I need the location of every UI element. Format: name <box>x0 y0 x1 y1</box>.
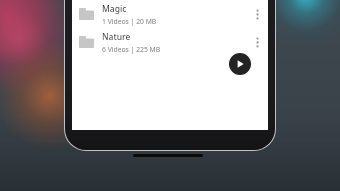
staticText: 1 Videos | 20 MB <box>102 17 157 26</box>
staticText: 6 Videos | 225 MB <box>102 45 161 54</box>
staticText: Nature <box>102 31 131 43</box>
button[interactable]: Play <box>229 53 251 75</box>
button[interactable]: More options <box>250 30 264 54</box>
button[interactable]: More options <box>250 2 264 26</box>
button[interactable]: Magic <box>72 0 268 28</box>
button[interactable]: Nature <box>72 28 268 56</box>
staticText: Magic <box>102 3 127 15</box>
